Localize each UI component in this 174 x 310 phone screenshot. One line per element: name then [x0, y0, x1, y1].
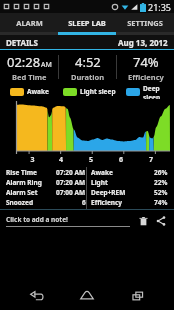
staticText: 74%	[133, 53, 159, 71]
button[interactable]: 74%	[117, 50, 174, 84]
staticText: 07:20 AM	[56, 168, 86, 177]
staticText: DETAILS	[6, 37, 38, 48]
staticText: 6	[82, 198, 86, 207]
staticText: Aug 13, 2012	[118, 37, 168, 48]
staticText: Awake	[91, 168, 113, 177]
staticText: 6	[116, 155, 126, 165]
button[interactable]: Delete	[136, 214, 150, 228]
staticText: 52%	[154, 188, 168, 197]
button[interactable]: Alarm Set	[6, 187, 86, 197]
button[interactable]: Home	[72, 282, 102, 310]
staticText: AM	[41, 60, 52, 70]
staticText: 22%	[154, 178, 168, 187]
staticText: 07:20 AM	[56, 178, 86, 187]
staticText: 21:35	[148, 1, 172, 13]
button[interactable]: Efficiency	[91, 197, 168, 207]
staticText: 4	[56, 155, 66, 165]
staticText: 74%	[154, 198, 168, 207]
staticText: Awake	[27, 87, 49, 96]
button[interactable]: Recent apps	[123, 282, 153, 310]
button[interactable]: Deep+REM	[91, 187, 168, 197]
staticText: Deep sleep	[143, 84, 174, 99]
staticText: Snoozed	[6, 198, 34, 207]
staticText: 26%	[154, 168, 168, 177]
staticText: Duration	[71, 72, 105, 82]
button[interactable]: DETAILS	[0, 35, 174, 49]
staticText: 07:00 AM	[56, 188, 86, 197]
button[interactable]: SLEEP LAB	[58, 13, 116, 32]
staticText: 3	[28, 155, 37, 165]
button[interactable]: Awake	[91, 167, 168, 177]
staticText: SLEEP DEPTH	[16, 108, 23, 144]
staticText: SLEEP LAB	[68, 18, 106, 28]
button[interactable]: 02:28	[0, 50, 58, 84]
staticText: 02:28	[7, 53, 41, 71]
button[interactable]: ALARM	[0, 13, 58, 32]
button[interactable]: 4:52	[59, 50, 116, 84]
staticText: Alarm Ring	[6, 178, 42, 187]
staticText: 4:52	[75, 53, 101, 71]
button[interactable]: Alarm Ring	[6, 177, 86, 187]
button[interactable]: Back	[21, 282, 51, 310]
staticText: Click to add a note!	[6, 215, 68, 224]
staticText: ALARM	[16, 18, 43, 28]
button[interactable]: Rise Time	[6, 167, 86, 177]
button[interactable]: Light	[91, 177, 168, 187]
button[interactable]: Share	[154, 214, 168, 228]
button[interactable]: Click to add a note!	[6, 215, 130, 227]
staticText: Rise Time	[6, 168, 37, 177]
staticText: SETTINGS	[127, 18, 163, 28]
staticText: Bed Time	[12, 72, 47, 82]
staticText: Alarm Set	[6, 188, 38, 197]
staticText: Efficiency	[128, 72, 164, 82]
staticText: Efficiency	[91, 198, 123, 207]
staticText: 7	[146, 155, 156, 165]
staticText: Light sleep	[80, 87, 116, 96]
staticText: Light	[91, 178, 108, 187]
button[interactable]: Snoozed	[6, 197, 86, 207]
staticText: Deep+REM	[91, 188, 126, 197]
staticText: 5	[86, 155, 96, 165]
button[interactable]: SETTINGS	[116, 13, 174, 32]
